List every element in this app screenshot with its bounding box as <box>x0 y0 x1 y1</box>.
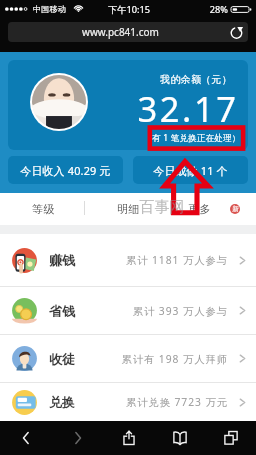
staticText: 更多 <box>188 202 211 216</box>
staticText: 我的余额（元） <box>116 73 248 86</box>
staticText: 28% <box>186 3 228 16</box>
button[interactable]: 今日成做 11 个 <box>133 156 248 184</box>
staticText: 中国移动 <box>33 4 67 14</box>
staticText: 累计兑换 7723 万元 <box>125 395 228 409</box>
staticText: 省钱 <box>49 303 75 319</box>
button[interactable]: 省钱 <box>0 287 256 334</box>
staticText: 今日成做 11 个 <box>153 163 228 178</box>
button[interactable]: Tabs <box>205 421 256 455</box>
button[interactable]: Share <box>103 421 154 455</box>
staticText: 新 <box>232 205 239 213</box>
button[interactable]: Back <box>0 421 52 455</box>
staticText: 等级 <box>32 202 55 216</box>
button[interactable]: 更多 <box>171 193 256 225</box>
button[interactable]: 等级 <box>0 193 86 225</box>
button[interactable]: www.pc841.com <box>8 22 248 42</box>
button[interactable]: Forward <box>52 421 103 455</box>
staticText: www.pc841.com <box>82 25 159 39</box>
button[interactable]: 我的余额（元） <box>8 60 248 150</box>
button[interactable] <box>30 73 88 131</box>
staticText: 今日收入 40.29 元 <box>20 163 111 178</box>
staticText: 百事网 <box>139 197 185 216</box>
staticText: 下午10:15 <box>89 3 169 16</box>
button[interactable]: 兑换 <box>0 383 256 421</box>
staticText: 累计 1181 万人参与 <box>125 253 228 267</box>
button[interactable]: Reload <box>229 25 244 40</box>
staticText: 累计有 198 万人拜师 <box>121 352 228 366</box>
button[interactable]: 今日收入 40.29 元 <box>8 156 123 184</box>
staticText: （有 1 笔兑换正在处理） <box>112 132 248 144</box>
staticText: 累计 393 万人参与 <box>132 304 228 318</box>
staticText: 赚钱 <box>49 252 75 268</box>
staticText: 收徒 <box>49 351 75 367</box>
button[interactable]: 赚钱 <box>0 234 256 286</box>
button[interactable]: Bookmarks <box>154 421 205 455</box>
staticText: 兑换 <box>49 394 75 410</box>
staticText: 明细 <box>117 202 140 216</box>
button[interactable]: 收徒 <box>0 335 256 382</box>
staticText: 32.17 <box>108 85 248 132</box>
button[interactable]: 明细 <box>86 193 171 225</box>
